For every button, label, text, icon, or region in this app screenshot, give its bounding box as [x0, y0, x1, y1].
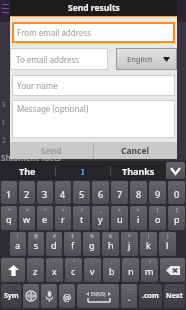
- button[interactable]: 6: [92, 181, 109, 204]
- button[interactable]: =: [55, 206, 71, 230]
- staticText: a: [15, 239, 21, 251]
- staticText: ?: [149, 259, 151, 265]
- staticText: 2: [24, 188, 30, 200]
- button[interactable]: 4: [55, 181, 71, 204]
- button[interactable]: ,: [122, 258, 139, 282]
- button[interactable]: Thanks: [111, 161, 165, 180]
- staticText: ': [54, 259, 56, 265]
- staticText: b: [109, 265, 115, 277]
- staticText: @: [34, 233, 39, 239]
- button[interactable]: 7: [111, 181, 128, 204]
- button[interactable]: 3: [37, 181, 53, 204]
- button[interactable]: &: [102, 232, 119, 256]
- button[interactable]: Voice input: [41, 284, 57, 308]
- staticText: Send: [41, 145, 62, 157]
- button[interactable]: I: [56, 161, 110, 180]
- staticText: h: [108, 239, 114, 251]
- button[interactable]: >: [130, 206, 147, 230]
- staticText: *: [128, 233, 131, 239]
- button[interactable]: #: [46, 232, 62, 256]
- staticText: 1: [6, 188, 12, 200]
- staticText: -: [35, 259, 37, 265]
- button[interactable]: Delete: [160, 258, 185, 282]
- button[interactable]: 0: [168, 181, 185, 204]
- button[interactable]: ?: [141, 258, 158, 282]
- button[interactable]: $: [64, 232, 81, 256]
- staticText: ÷: [44, 207, 47, 213]
- staticText: Cancel: [121, 145, 150, 157]
- button[interactable]: *: [121, 232, 138, 256]
- button[interactable]: Next: [164, 284, 185, 308]
- staticText: From email address: [17, 27, 92, 38]
- staticText: i: [137, 213, 140, 225]
- staticText: &: [109, 233, 113, 239]
- staticText: Thanks: [122, 165, 155, 177]
- button[interactable]: Send: [10, 142, 93, 159]
- staticText: (: [148, 233, 150, 239]
- button[interactable]: ": [65, 258, 82, 282]
- button[interactable]: Message (optional): [12, 100, 175, 138]
- button[interactable]: Change language: [23, 284, 39, 308]
- button[interactable]: -: [27, 258, 44, 282]
- staticText: z: [33, 265, 38, 277]
- button[interactable]: ×: [19, 206, 35, 230]
- button[interactable]: From email address: [12, 22, 175, 43]
- staticText: u: [117, 213, 123, 225]
- button[interactable]: _: [92, 206, 109, 230]
- button[interactable]: ): [159, 232, 176, 256]
- button[interactable]: 5: [73, 181, 90, 204]
- staticText: S: [2, 100, 6, 110]
- button[interactable]: Cancel: [94, 142, 177, 159]
- button[interactable]: English: [116, 48, 177, 70]
- button[interactable]: Sym: [1, 284, 21, 308]
- staticText: p: [174, 213, 180, 225]
- staticText: e: [42, 213, 48, 225]
- staticText: 8: [136, 188, 142, 200]
- button[interactable]: 9: [149, 181, 166, 204]
- staticText: >: [137, 207, 140, 213]
- staticText: 5: [79, 188, 85, 200]
- button[interactable]: ...: [121, 284, 137, 308]
- staticText: To email address: [16, 54, 80, 65]
- button[interactable]: :: [84, 258, 101, 282]
- button[interactable]: Your name: [12, 75, 175, 96]
- button[interactable]: To email address: [10, 48, 108, 70]
- button[interactable]: ]: [168, 206, 185, 230]
- button[interactable]: The: [0, 161, 55, 180]
- button[interactable]: (: [140, 232, 157, 256]
- button[interactable]: 2: [19, 181, 35, 204]
- button[interactable]: !: [10, 232, 26, 256]
- staticText: n: [128, 265, 134, 277]
- button[interactable]: +: [1, 206, 17, 230]
- staticText: t: [80, 213, 84, 225]
- staticText: x: [52, 265, 57, 277]
- button[interactable]: 8: [130, 181, 147, 204]
- staticText: I: [2, 118, 5, 128]
- staticText: Send results: [68, 2, 120, 14]
- staticText: m: [145, 265, 154, 277]
- button[interactable]: 1: [1, 181, 17, 204]
- button[interactable]: @: [28, 232, 44, 256]
- button[interactable]: /: [73, 206, 90, 230]
- staticText: ×: [26, 207, 29, 213]
- button[interactable]: ': [46, 258, 63, 282]
- button[interactable]: Space: [77, 284, 119, 308]
- staticText: Your name: [17, 80, 58, 91]
- staticText: l: [166, 239, 169, 251]
- button[interactable]: ;: [103, 258, 120, 282]
- button[interactable]: @: [59, 284, 75, 308]
- staticText: s: [34, 239, 39, 251]
- button[interactable]: [: [149, 206, 166, 230]
- staticText: ": [73, 259, 75, 265]
- staticText: [: [157, 207, 159, 213]
- staticText: q: [6, 213, 12, 225]
- staticText: $: [71, 233, 74, 239]
- staticText: Shipment facts: [1, 152, 61, 163]
- button[interactable]: <: [111, 206, 128, 230]
- button[interactable]: ÷: [37, 206, 53, 230]
- button[interactable]: %: [83, 232, 100, 256]
- button[interactable]: .com: [139, 284, 162, 308]
- button[interactable]: Shift: [1, 258, 25, 282]
- button[interactable]: Expand suggestions: [166, 162, 185, 179]
- staticText: y: [98, 213, 103, 225]
